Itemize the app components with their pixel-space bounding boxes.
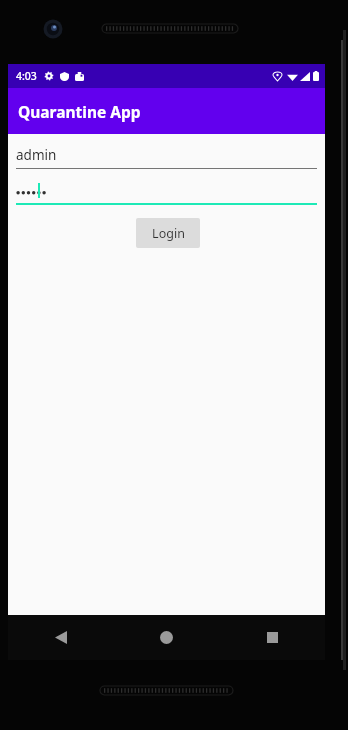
button[interactable]: Back [8, 615, 113, 660]
staticText: Quarantine App [18, 101, 141, 122]
button[interactable] [16, 179, 317, 205]
staticText: admin [16, 146, 57, 164]
button[interactable]: Recent apps [219, 615, 325, 660]
button[interactable]: Login [136, 218, 200, 248]
staticText: 4:03 [16, 69, 37, 83]
staticText: Login [152, 225, 185, 242]
button[interactable]: admin [16, 144, 317, 169]
button[interactable]: Home [113, 615, 219, 660]
